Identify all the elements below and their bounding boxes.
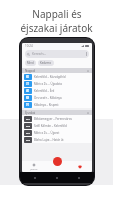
button[interactable]: 31	[22, 80, 92, 87]
staticText: 31	[26, 82, 30, 86]
staticText: Keresés…	[32, 52, 47, 56]
staticText: 908	[26, 139, 30, 142]
button[interactable]: Járatok	[22, 161, 46, 172]
staticText: 907	[26, 132, 30, 135]
staticText: 10:24	[25, 44, 33, 48]
staticText: 91	[26, 103, 30, 107]
button[interactable]: 901	[22, 115, 92, 122]
staticText: 906	[26, 125, 30, 128]
staticText: Békásmegyer – Ferencváros	[34, 117, 72, 121]
button[interactable]: 906	[22, 122, 92, 129]
staticText: Kelenföld – Érd	[34, 89, 55, 93]
staticText: Örs vezér – Kőbánya	[34, 96, 62, 100]
staticText: Móricz Zs. – Újpalota	[34, 82, 62, 86]
button[interactable]: Kedvenc	[38, 60, 54, 66]
button[interactable]: Új járat hozzáadása	[53, 157, 62, 166]
staticText: Kelenföld – Közvágóhíd	[34, 75, 66, 79]
button[interactable]: 908	[22, 136, 92, 143]
staticText: Móricz Zs. – Újpest	[34, 131, 60, 135]
staticText: Kedvenc	[40, 61, 52, 65]
button[interactable]: 8E	[22, 73, 92, 80]
staticText: Kőbánya – Kispest	[34, 103, 59, 107]
staticText: 40	[26, 89, 30, 93]
button[interactable]: Kedvencek	[68, 161, 92, 172]
button[interactable]: 91	[22, 101, 92, 108]
button[interactable]: Mind	[25, 60, 36, 66]
staticText: Nappali	[25, 69, 36, 73]
staticText: Nappali és	[32, 7, 82, 21]
button[interactable]: Nappali	[22, 68, 92, 73]
staticText: Széll Kálmán – Kelenföld	[34, 124, 67, 128]
staticText: Blaha Lujza – Határ út	[34, 138, 64, 142]
staticText: 88	[26, 96, 30, 100]
button[interactable]: Keresés…	[25, 50, 89, 58]
button[interactable]: 907	[22, 129, 92, 136]
button[interactable]: 88	[22, 94, 92, 101]
staticText: éjszakai járatok	[20, 21, 93, 35]
button[interactable]: 40	[22, 87, 92, 94]
staticText: 901	[26, 118, 30, 121]
staticText: 8E	[26, 75, 30, 79]
staticText: Éjszakai	[25, 111, 36, 115]
staticText: Járatok	[30, 168, 38, 171]
staticText: Mind	[27, 61, 34, 65]
button[interactable]: Éjszakai	[22, 110, 92, 115]
